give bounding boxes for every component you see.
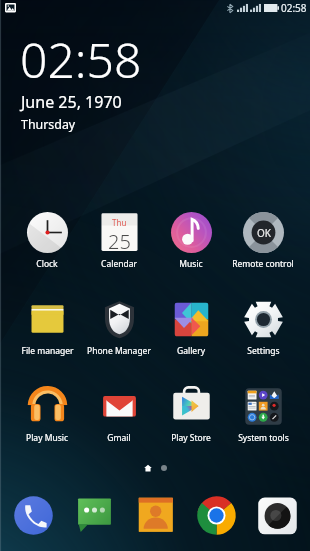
staticText: Play Music bbox=[26, 432, 68, 444]
staticText: Play Store bbox=[171, 432, 211, 444]
button[interactable]: Play Music bbox=[11, 386, 83, 444]
button[interactable]: Phone bbox=[3, 490, 64, 540]
staticText: Calendar bbox=[101, 258, 137, 270]
staticText: Settings bbox=[247, 345, 280, 357]
staticText: 25 bbox=[108, 228, 131, 253]
staticText: Gmail bbox=[107, 432, 131, 444]
button[interactable]: Play Store bbox=[155, 386, 227, 444]
button[interactable]: Gallery bbox=[155, 299, 227, 357]
staticText: Phone Manager bbox=[87, 345, 151, 357]
button[interactable]: Clock bbox=[11, 212, 83, 270]
button[interactable]: Music bbox=[155, 212, 227, 270]
staticText: Clock bbox=[36, 258, 58, 270]
staticText: System tools bbox=[238, 432, 289, 444]
staticText: Music bbox=[179, 258, 203, 270]
other: Screenshot notification bbox=[5, 3, 16, 14]
button[interactable]: Camera bbox=[247, 490, 308, 540]
staticText: File manager bbox=[21, 345, 74, 357]
button[interactable]: Thu bbox=[83, 212, 155, 270]
button[interactable]: Settings bbox=[227, 299, 299, 357]
staticText: 02:58 bbox=[281, 1, 307, 15]
button[interactable]: Chrome bbox=[186, 490, 247, 540]
staticText: Thursday bbox=[21, 116, 76, 133]
staticText: Thu bbox=[112, 217, 127, 228]
staticText: 02:58 bbox=[20, 27, 142, 92]
staticText: OK bbox=[257, 226, 271, 240]
button[interactable]: Phone Manager bbox=[83, 299, 155, 357]
button[interactable]: Gmail bbox=[83, 386, 155, 444]
button[interactable]: Messaging bbox=[64, 490, 125, 540]
button[interactable]: Contacts bbox=[125, 490, 186, 540]
button[interactable]: OK bbox=[227, 212, 299, 270]
staticText: Gallery bbox=[177, 345, 205, 357]
button[interactable]: System tools bbox=[227, 386, 299, 444]
staticText: June 25, 1970 bbox=[21, 91, 122, 113]
button[interactable]: File manager bbox=[11, 299, 83, 357]
staticText: Remote control bbox=[232, 258, 294, 270]
